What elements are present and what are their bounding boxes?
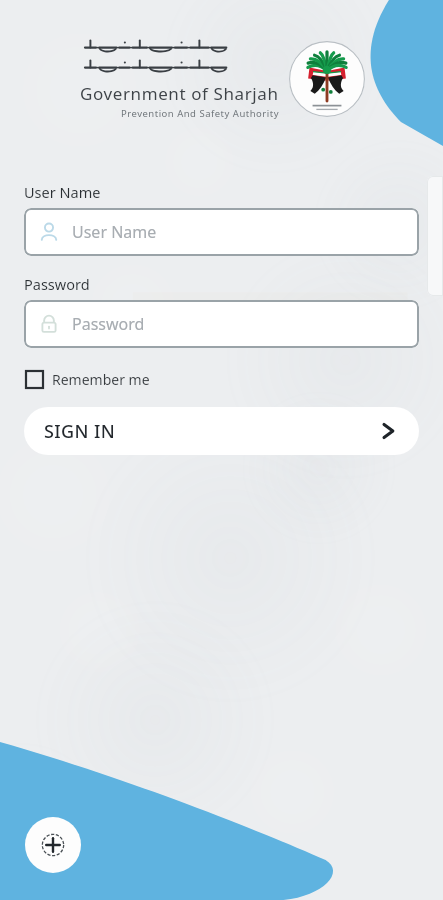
button[interactable]: Password: [24, 300, 419, 348]
button[interactable]: SIGN IN: [24, 407, 419, 455]
button[interactable]: Remember me: [24, 366, 152, 393]
staticText: User Name: [72, 221, 157, 243]
staticText: User Name: [24, 182, 101, 202]
staticText: Prevention And Safety Authority: [121, 107, 279, 120]
button[interactable]: Add: [25, 817, 81, 873]
staticText: Password: [72, 313, 145, 335]
staticText: SIGN IN: [44, 419, 116, 444]
button[interactable]: User Name: [24, 208, 419, 256]
staticText: Remember me: [52, 370, 150, 389]
staticText: Password: [24, 274, 90, 294]
staticText: Government of Sharjah: [80, 82, 279, 105]
